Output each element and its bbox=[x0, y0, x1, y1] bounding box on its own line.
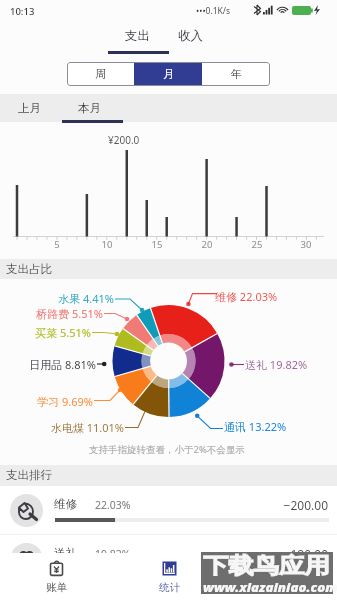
staticText: 送礼 19.82% bbox=[245, 357, 308, 372]
staticText: 日用品 8.81% bbox=[0, 357, 96, 372]
staticText: 桥路费 5.51% bbox=[0, 306, 103, 321]
staticText: 本月 bbox=[78, 101, 101, 115]
staticText: 支出排行 bbox=[6, 468, 52, 482]
button[interactable]: 账单 bbox=[0, 553, 113, 600]
staticText: 支持手指旋转查看，小于2%不会显示 bbox=[89, 443, 245, 456]
button[interactable]: 支出 bbox=[125, 28, 150, 44]
staticText: 账单 bbox=[46, 581, 67, 594]
staticText: 月 bbox=[163, 67, 174, 81]
staticText: 学习 9.69% bbox=[0, 394, 93, 409]
staticText: 水电煤 11.01% bbox=[4, 420, 124, 435]
staticText: 25 bbox=[245, 238, 269, 251]
other: 统计 bbox=[162, 561, 177, 576]
staticText: −180.00 bbox=[224, 546, 328, 562]
staticText: 支出 bbox=[125, 28, 150, 44]
staticText: 水果 4.41% bbox=[0, 291, 114, 306]
staticText: 22.03% bbox=[95, 498, 131, 512]
button[interactable]: 本月 bbox=[78, 101, 101, 115]
staticText: 支出占比 bbox=[6, 262, 52, 276]
button[interactable]: 我的 bbox=[225, 553, 337, 600]
staticText: 送礼 bbox=[54, 546, 77, 560]
staticText: 上月 bbox=[18, 101, 41, 115]
button[interactable]: 送礼 bbox=[0, 535, 337, 584]
staticText: 周 bbox=[95, 67, 106, 81]
staticText: 我的 bbox=[271, 581, 292, 594]
staticText: 10 bbox=[95, 238, 119, 251]
other: 我的 bbox=[274, 561, 289, 576]
button[interactable]: 月 bbox=[134, 62, 202, 86]
staticText: −200.00 bbox=[224, 497, 328, 513]
button[interactable]: 年 bbox=[202, 62, 270, 86]
staticText: 维修 22.03% bbox=[215, 289, 278, 304]
staticText: 买菜 5.51% bbox=[0, 325, 91, 340]
staticText: www.xlazainiao.com bbox=[203, 579, 337, 596]
button[interactable]: 维修 bbox=[0, 486, 337, 535]
other: 账单 bbox=[49, 561, 64, 576]
staticText: •••0.1K/s bbox=[196, 5, 231, 17]
staticText: 统计 bbox=[159, 581, 180, 594]
staticText: 通讯 13.22% bbox=[224, 419, 287, 434]
button[interactable]: 统计 bbox=[113, 553, 225, 600]
staticText: 10:13 bbox=[10, 5, 35, 18]
staticText: 19.82% bbox=[95, 547, 131, 561]
staticText: 20 bbox=[195, 238, 219, 251]
button[interactable]: 上月 bbox=[18, 101, 41, 115]
staticText: 15 bbox=[145, 238, 169, 251]
staticText: 维修 bbox=[54, 497, 77, 511]
button[interactable]: 收入 bbox=[178, 28, 203, 44]
staticText: 下载鸟应用 bbox=[203, 552, 330, 579]
staticText: 30 bbox=[294, 238, 318, 251]
staticText: 年 bbox=[231, 67, 242, 81]
staticText: ¥200.0 bbox=[108, 133, 140, 147]
button[interactable]: 周 bbox=[67, 62, 134, 86]
staticText: 5 bbox=[45, 238, 69, 251]
staticText: 收入 bbox=[178, 28, 203, 44]
